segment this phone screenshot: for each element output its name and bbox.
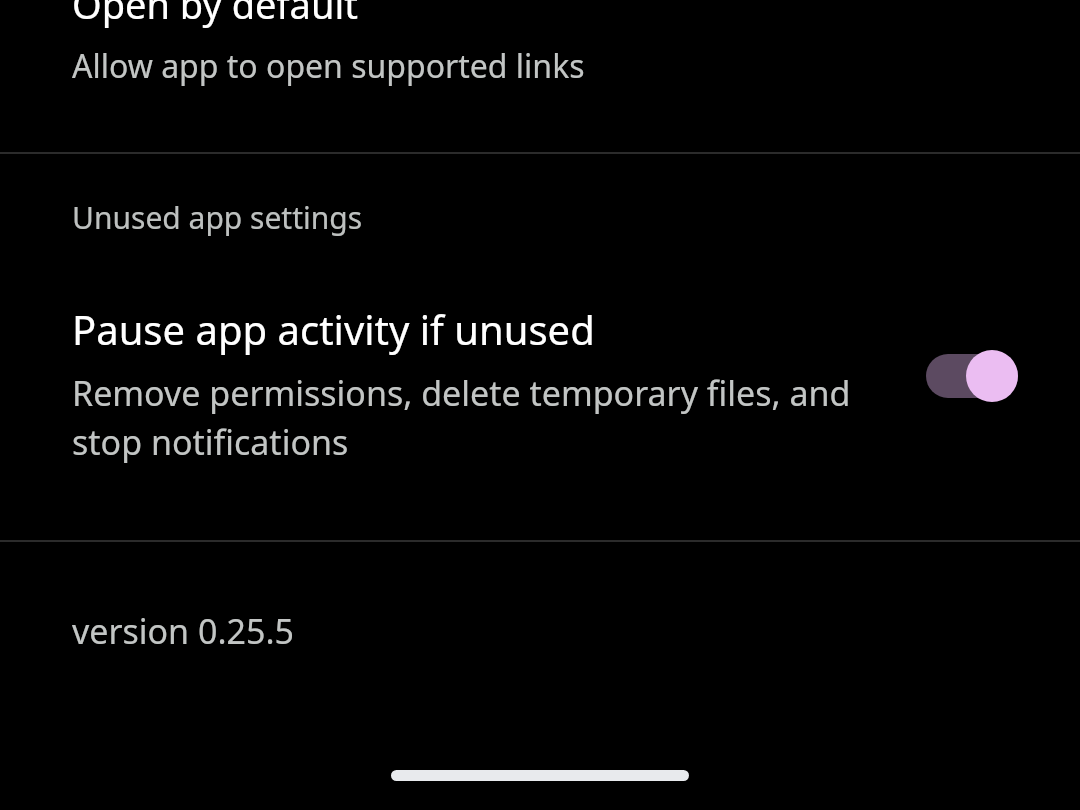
button[interactable]: Pause app activity if unused toggle xyxy=(926,350,1018,402)
staticText: Pause app activity if unused xyxy=(72,302,595,356)
staticText: Open by default xyxy=(72,0,358,30)
staticText: Unused app settings xyxy=(72,197,363,238)
button[interactable]: Pause app activity if unused xyxy=(0,266,1080,540)
staticText: Allow app to open supported links xyxy=(72,44,585,88)
button[interactable]: Open by default xyxy=(0,0,1080,152)
staticText: version 0.25.5 xyxy=(72,608,294,654)
staticText: Remove permissions, delete temporary fil… xyxy=(72,370,898,465)
